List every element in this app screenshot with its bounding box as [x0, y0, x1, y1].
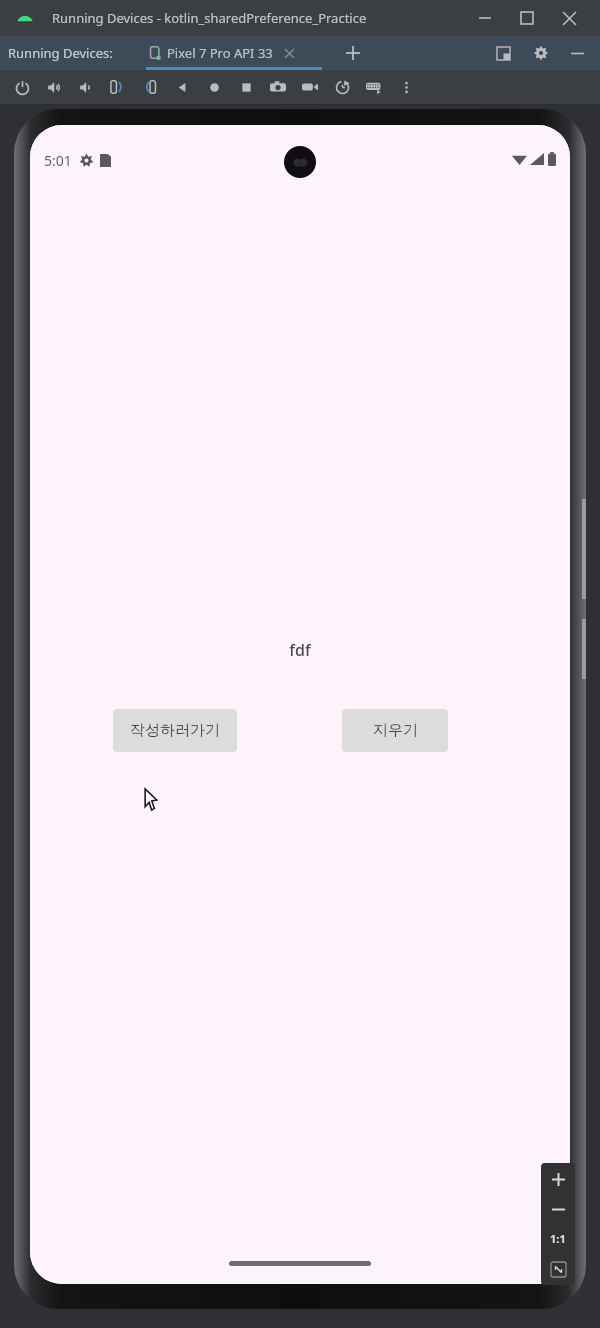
- button[interactable]: Home: [198, 71, 230, 103]
- staticText: Running Devices - kotlin_sharedPreferenc…: [52, 9, 367, 27]
- button[interactable]: Overview: [230, 71, 262, 103]
- button[interactable]: Close tab: [281, 45, 297, 61]
- button[interactable]: Keyboard: [358, 71, 390, 103]
- button[interactable]: Zoom out: [541, 1195, 575, 1223]
- button[interactable]: Power: [6, 71, 38, 103]
- button[interactable]: Add device: [338, 38, 368, 68]
- staticText: 5:01: [44, 151, 72, 170]
- staticText: Pixel 7 Pro API 33: [167, 44, 273, 62]
- button[interactable]: Maximize: [506, 1, 548, 35]
- button[interactable]: Volume up: [38, 71, 70, 103]
- button[interactable]: Pixel 7 Pro API 33: [148, 36, 297, 70]
- button[interactable]: More: [390, 71, 422, 103]
- staticText: Running Devices:: [8, 44, 113, 62]
- button[interactable]: Volume down: [70, 71, 102, 103]
- button[interactable]: Rotate left: [102, 71, 134, 103]
- button[interactable]: Zoom in: [541, 1163, 575, 1195]
- button[interactable]: Hide: [562, 38, 592, 68]
- staticText: 1:1: [550, 1231, 566, 1246]
- button[interactable]: Rotate history: [326, 71, 358, 103]
- button[interactable]: Fit to screen: [541, 1253, 575, 1285]
- button[interactable]: 1:1: [541, 1223, 575, 1253]
- button[interactable]: Minimize: [464, 1, 506, 35]
- button[interactable]: Record screen: [294, 71, 326, 103]
- button[interactable]: Rotate right: [134, 71, 166, 103]
- button[interactable]: 작성하러가기: [113, 709, 237, 752]
- button[interactable]: Back: [166, 71, 198, 103]
- button[interactable]: Layout options: [488, 38, 518, 68]
- button[interactable]: Settings: [526, 38, 556, 68]
- staticText: 작성하러가기: [130, 721, 220, 740]
- button[interactable]: Screenshot: [262, 71, 294, 103]
- staticText: fdf: [289, 639, 311, 661]
- staticText: 지우기: [373, 721, 418, 740]
- button[interactable]: Close: [548, 1, 590, 35]
- button[interactable]: 지우기: [342, 709, 448, 752]
